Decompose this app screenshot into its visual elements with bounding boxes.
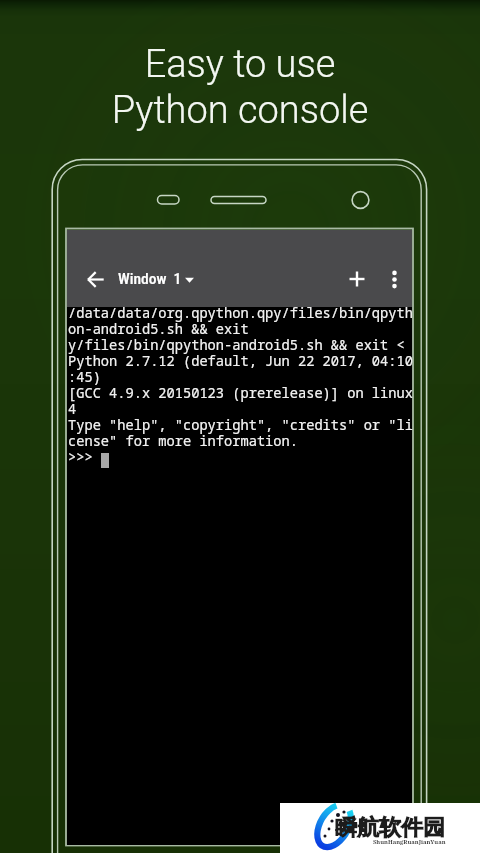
button[interactable]: Window 1 <box>118 251 194 307</box>
button[interactable]: More options <box>376 251 412 307</box>
staticText: Window 1 <box>118 270 182 288</box>
staticText: ShunHangRuanJianYuan <box>373 838 446 846</box>
button[interactable]: New window <box>338 251 376 307</box>
staticText: 瞬航软件园 <box>335 814 445 842</box>
button[interactable]: Back <box>67 251 124 307</box>
staticText: Easy to use Python console <box>0 41 480 133</box>
staticText: /data/data/org.qpython.qpy/files/bin/qpy… <box>68 306 413 466</box>
